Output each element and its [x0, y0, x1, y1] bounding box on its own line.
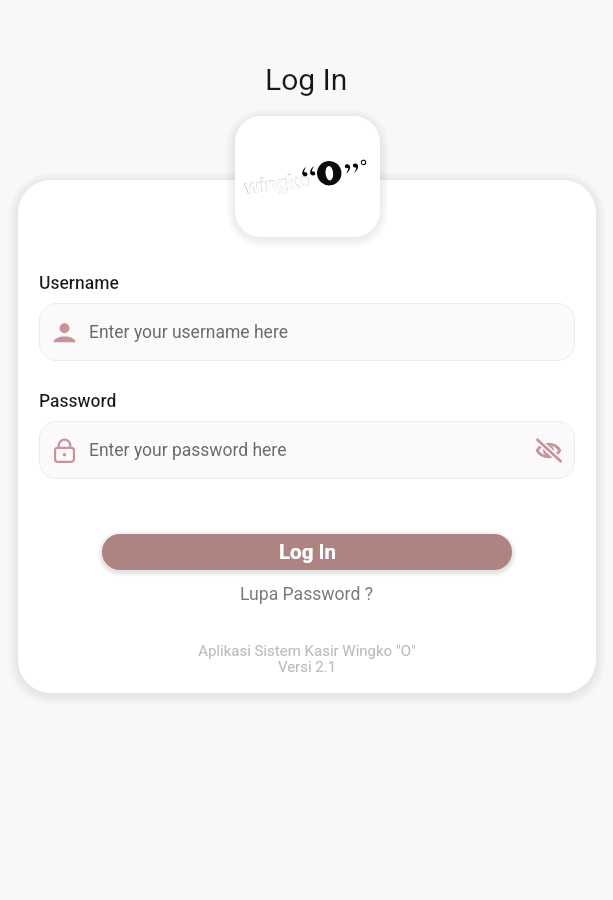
button[interactable]: Lupa Password ? [236, 580, 378, 609]
staticText: Password [39, 391, 117, 412]
staticText: Lupa Password ? [240, 584, 374, 605]
staticText: Log In [265, 62, 348, 97]
staticText: wingko [244, 167, 310, 200]
staticText: Enter your password here [89, 440, 287, 461]
staticText: wingko [243, 166, 311, 200]
staticText: Username [39, 273, 119, 294]
button[interactable]: Enter your username here [39, 303, 575, 361]
button[interactable]: Enter your password here [39, 421, 575, 479]
staticText: Log In [279, 540, 336, 564]
staticText: Aplikasi Sistem Kasir Wingko "O" Versi 2… [39, 642, 575, 675]
staticText: Enter your username here [89, 322, 288, 343]
button[interactable]: Log In [102, 534, 512, 570]
button[interactable]: Show password [532, 434, 564, 466]
